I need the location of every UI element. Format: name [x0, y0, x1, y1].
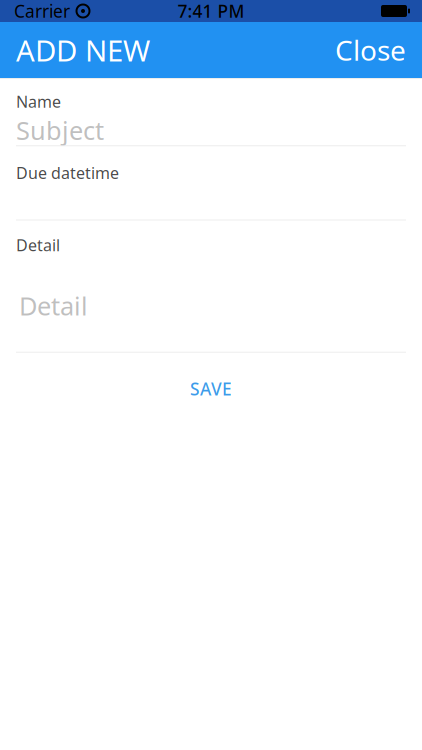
staticText: Name [16, 91, 61, 112]
staticText: Detail [16, 234, 60, 256]
staticText: Subject [16, 113, 104, 147]
staticText: Carrier [14, 0, 70, 22]
staticText: ADD NEW [16, 30, 150, 69]
staticText: Close [335, 31, 406, 69]
staticText: SAVE [190, 377, 232, 400]
button[interactable]: Detail [16, 256, 406, 352]
button[interactable]: ADD NEW [16, 30, 150, 69]
button[interactable]: SAVE [0, 353, 422, 425]
button[interactable]: Close [335, 31, 406, 69]
staticText: Detail [19, 289, 88, 322]
staticText: 7:41 PM [177, 0, 244, 22]
staticText: Due datetime [16, 162, 119, 183]
button[interactable]: Subject [16, 112, 406, 145]
